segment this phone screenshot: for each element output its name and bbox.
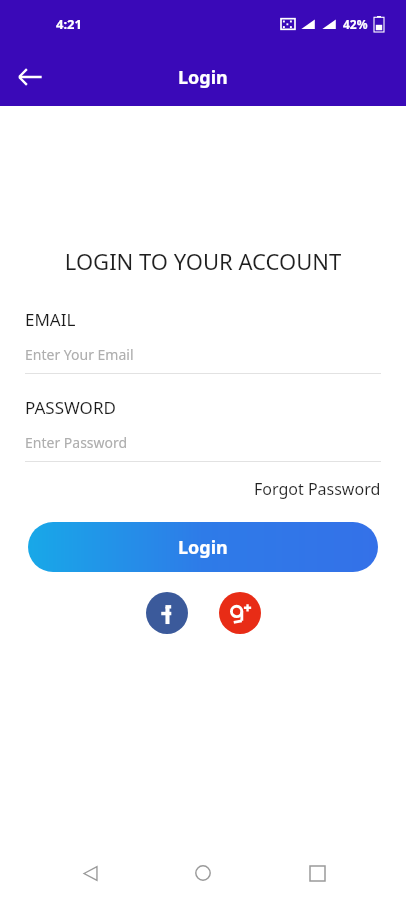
staticText: Enter Your Email (25, 345, 134, 364)
button[interactable]: Home (179, 849, 227, 897)
staticText: EMAIL (25, 308, 76, 331)
button[interactable]: Back (8, 55, 52, 99)
button[interactable]: Back (66, 849, 114, 897)
button[interactable]: PASSWORD (25, 396, 381, 462)
staticText: PASSWORD (25, 396, 116, 419)
staticText: Login (178, 65, 228, 90)
button[interactable]: Recent apps (293, 849, 341, 897)
button[interactable]: Sign in with Google Plus (219, 592, 261, 634)
staticText: 4:21 (56, 15, 82, 33)
staticText: 42% (343, 16, 368, 32)
button[interactable]: Forgot Password (254, 474, 381, 504)
staticText: Login (178, 535, 228, 560)
staticText: LOGIN TO YOUR ACCOUNT (25, 246, 381, 276)
button[interactable]: Login (28, 522, 378, 572)
button[interactable]: Sign in with Facebook (146, 592, 188, 634)
button[interactable]: EMAIL (25, 308, 381, 374)
staticText: Forgot Password (254, 478, 381, 500)
staticText: Enter Password (25, 433, 128, 452)
